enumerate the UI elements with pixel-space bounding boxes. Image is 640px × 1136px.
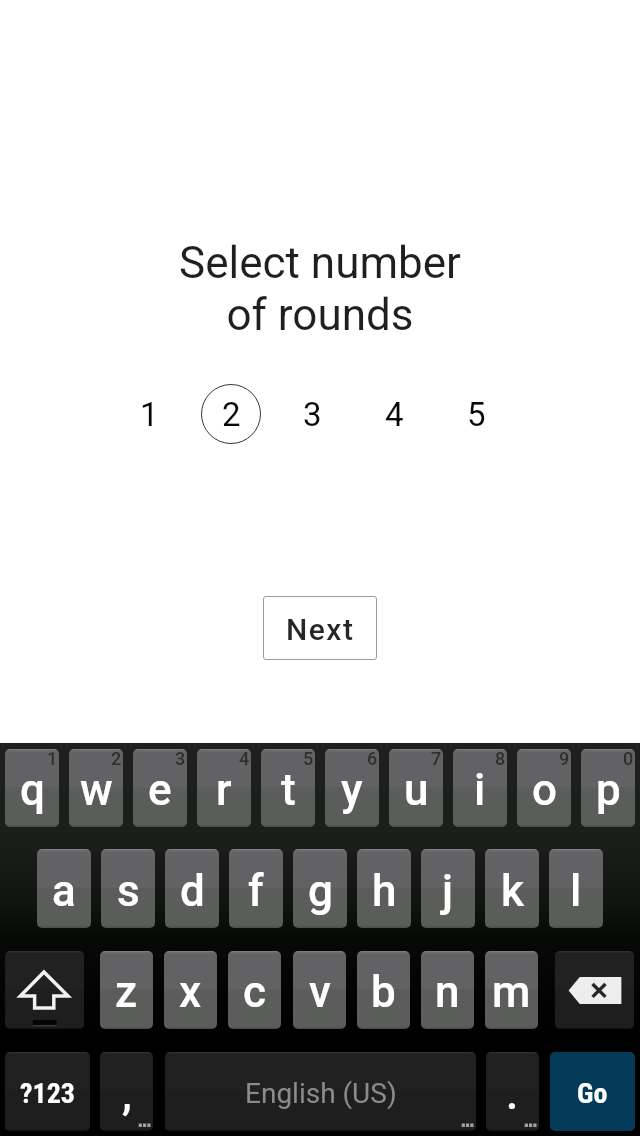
button[interactable]: p: [581, 749, 635, 827]
button[interactable]: .: [486, 1052, 539, 1131]
staticText: t: [281, 764, 296, 816]
staticText: English (US): [245, 1077, 397, 1110]
button[interactable]: 4: [364, 384, 424, 444]
staticText: o: [532, 764, 557, 816]
button[interactable]: t: [261, 749, 315, 827]
button[interactable]: 1: [119, 384, 179, 444]
button[interactable]: ,: [100, 1052, 153, 1131]
staticText: g: [308, 865, 333, 917]
staticText: 2: [111, 749, 122, 769]
staticText: i: [474, 764, 486, 816]
staticText: 3: [175, 749, 186, 769]
button[interactable]: v: [293, 951, 346, 1029]
staticText: 1: [47, 749, 58, 769]
button[interactable]: w: [69, 749, 123, 827]
button[interactable]: j: [421, 849, 475, 928]
button[interactable]: e: [133, 749, 187, 827]
staticText: Select number of rounds: [0, 237, 640, 341]
staticText: w: [80, 764, 113, 816]
staticText: k: [501, 865, 524, 917]
button[interactable]: Delete: [555, 951, 634, 1029]
staticText: 3: [303, 395, 322, 434]
staticText: h: [372, 865, 397, 917]
staticText: z: [115, 966, 138, 1018]
button[interactable]: 2: [201, 384, 261, 444]
button[interactable]: z: [100, 951, 153, 1029]
button[interactable]: n: [421, 951, 474, 1029]
staticText: .: [506, 1068, 519, 1120]
button[interactable]: m: [485, 951, 538, 1029]
button[interactable]: c: [228, 951, 281, 1029]
staticText: a: [52, 865, 76, 917]
staticText: ?123: [20, 1077, 75, 1110]
button[interactable]: Next: [263, 596, 377, 660]
button[interactable]: Go: [550, 1052, 635, 1131]
staticText: 4: [385, 395, 404, 434]
button[interactable]: k: [485, 849, 539, 928]
staticText: l: [570, 865, 582, 917]
button[interactable]: l: [549, 849, 603, 928]
button[interactable]: x: [164, 951, 217, 1029]
button[interactable]: s: [101, 849, 155, 928]
staticText: 4: [239, 749, 250, 769]
button[interactable]: o: [517, 749, 571, 827]
staticText: n: [435, 966, 460, 1018]
staticText: m: [492, 966, 531, 1018]
button[interactable]: 5: [446, 384, 506, 444]
staticText: 6: [367, 749, 378, 769]
button[interactable]: f: [229, 849, 283, 928]
button[interactable]: h: [357, 849, 411, 928]
button[interactable]: y: [325, 749, 379, 827]
staticText: c: [243, 966, 266, 1018]
staticText: 5: [303, 749, 314, 769]
staticText: 0: [623, 749, 634, 769]
button[interactable]: q: [5, 749, 59, 827]
button[interactable]: r: [197, 749, 251, 827]
staticText: q: [20, 764, 45, 816]
staticText: u: [404, 764, 429, 816]
staticText: x: [179, 966, 202, 1018]
staticText: r: [216, 764, 232, 816]
staticText: 9: [559, 749, 570, 769]
staticText: Go: [577, 1077, 608, 1110]
button[interactable]: ?123: [5, 1052, 90, 1131]
staticText: f: [248, 865, 264, 917]
button[interactable]: a: [37, 849, 91, 928]
button[interactable]: i: [453, 749, 507, 827]
staticText: 7: [431, 749, 442, 769]
staticText: ,: [122, 1068, 132, 1120]
button[interactable]: u: [389, 749, 443, 827]
staticText: y: [341, 764, 363, 816]
button[interactable]: English (US): [165, 1052, 476, 1131]
button[interactable]: g: [293, 849, 347, 928]
staticText: 1: [140, 395, 159, 434]
button[interactable]: d: [165, 849, 219, 928]
staticText: d: [180, 865, 205, 917]
button[interactable]: b: [357, 951, 410, 1029]
staticText: 8: [495, 749, 506, 769]
staticText: p: [596, 764, 621, 816]
staticText: b: [371, 966, 396, 1018]
staticText: s: [117, 865, 140, 917]
staticText: j: [442, 865, 454, 917]
staticText: v: [309, 966, 331, 1018]
button[interactable]: 3: [282, 384, 342, 444]
staticText: 5: [467, 395, 486, 434]
button[interactable]: Shift: [5, 951, 84, 1029]
staticText: Next: [286, 612, 355, 647]
staticText: e: [148, 764, 172, 816]
staticText: 2: [222, 395, 241, 434]
